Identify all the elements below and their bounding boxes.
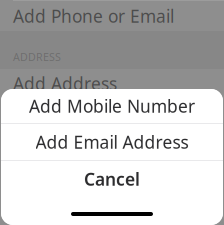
- staticText: Add Address: [13, 72, 117, 95]
- staticText: Add Mobile Number: [29, 94, 195, 117]
- button[interactable]: Add Mobile Number: [1, 89, 223, 123]
- button[interactable]: Add Email Address: [1, 124, 223, 160]
- staticText: ADDRESS: [13, 50, 61, 64]
- button[interactable]: Cancel: [1, 161, 223, 197]
- staticText: Cancel: [84, 167, 140, 190]
- staticText: Add Phone or Email: [13, 4, 174, 27]
- staticText: Add Email Address: [35, 130, 188, 153]
